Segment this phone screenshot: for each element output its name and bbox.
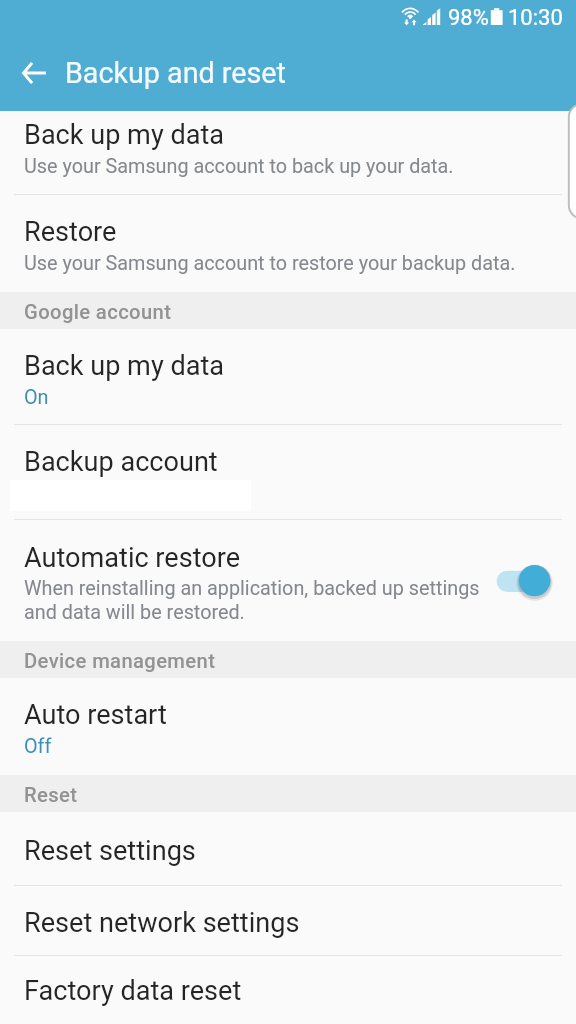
- staticText: When reinstalling an application, backed…: [24, 577, 492, 623]
- staticText: Backup account: [24, 446, 218, 478]
- button[interactable]: Reset settings: [0, 812, 576, 885]
- button[interactable]: Restore: [0, 195, 576, 292]
- staticText: Use your Samsung account to restore your…: [24, 252, 516, 275]
- button[interactable]: Back up my data: [0, 329, 576, 424]
- staticText: 10:30: [508, 5, 563, 31]
- staticText: Google account: [24, 300, 172, 324]
- staticText: Restore: [24, 216, 117, 248]
- staticText: Automatic restore: [24, 542, 240, 574]
- button[interactable]: Automatic restore toggle: [494, 564, 558, 608]
- staticText: Back up my data: [24, 350, 225, 382]
- staticText: Reset settings: [24, 835, 196, 867]
- button[interactable]: Auto restart: [0, 678, 576, 775]
- staticText: Reset: [24, 783, 78, 807]
- button[interactable]: Reset network settings: [0, 886, 576, 955]
- staticText: Factory data reset: [24, 975, 242, 1007]
- staticText: Back up my data: [24, 119, 225, 151]
- staticText: Off: [24, 735, 52, 758]
- button[interactable]: Factory data reset: [0, 956, 576, 1024]
- staticText: On: [24, 386, 49, 409]
- staticText: Backup and reset: [65, 56, 286, 90]
- button[interactable]: Back up my data: [0, 111, 576, 194]
- staticText: Use your Samsung account to back up your…: [24, 155, 454, 178]
- staticText: 98%: [448, 5, 489, 31]
- button[interactable]: Backup account: [0, 425, 576, 519]
- button[interactable]: Automatic restore: [0, 520, 576, 641]
- staticText: Device management: [24, 649, 216, 673]
- staticText: Reset network settings: [24, 907, 300, 939]
- staticText: Auto restart: [24, 699, 167, 731]
- button[interactable]: Navigate up: [8, 47, 59, 98]
